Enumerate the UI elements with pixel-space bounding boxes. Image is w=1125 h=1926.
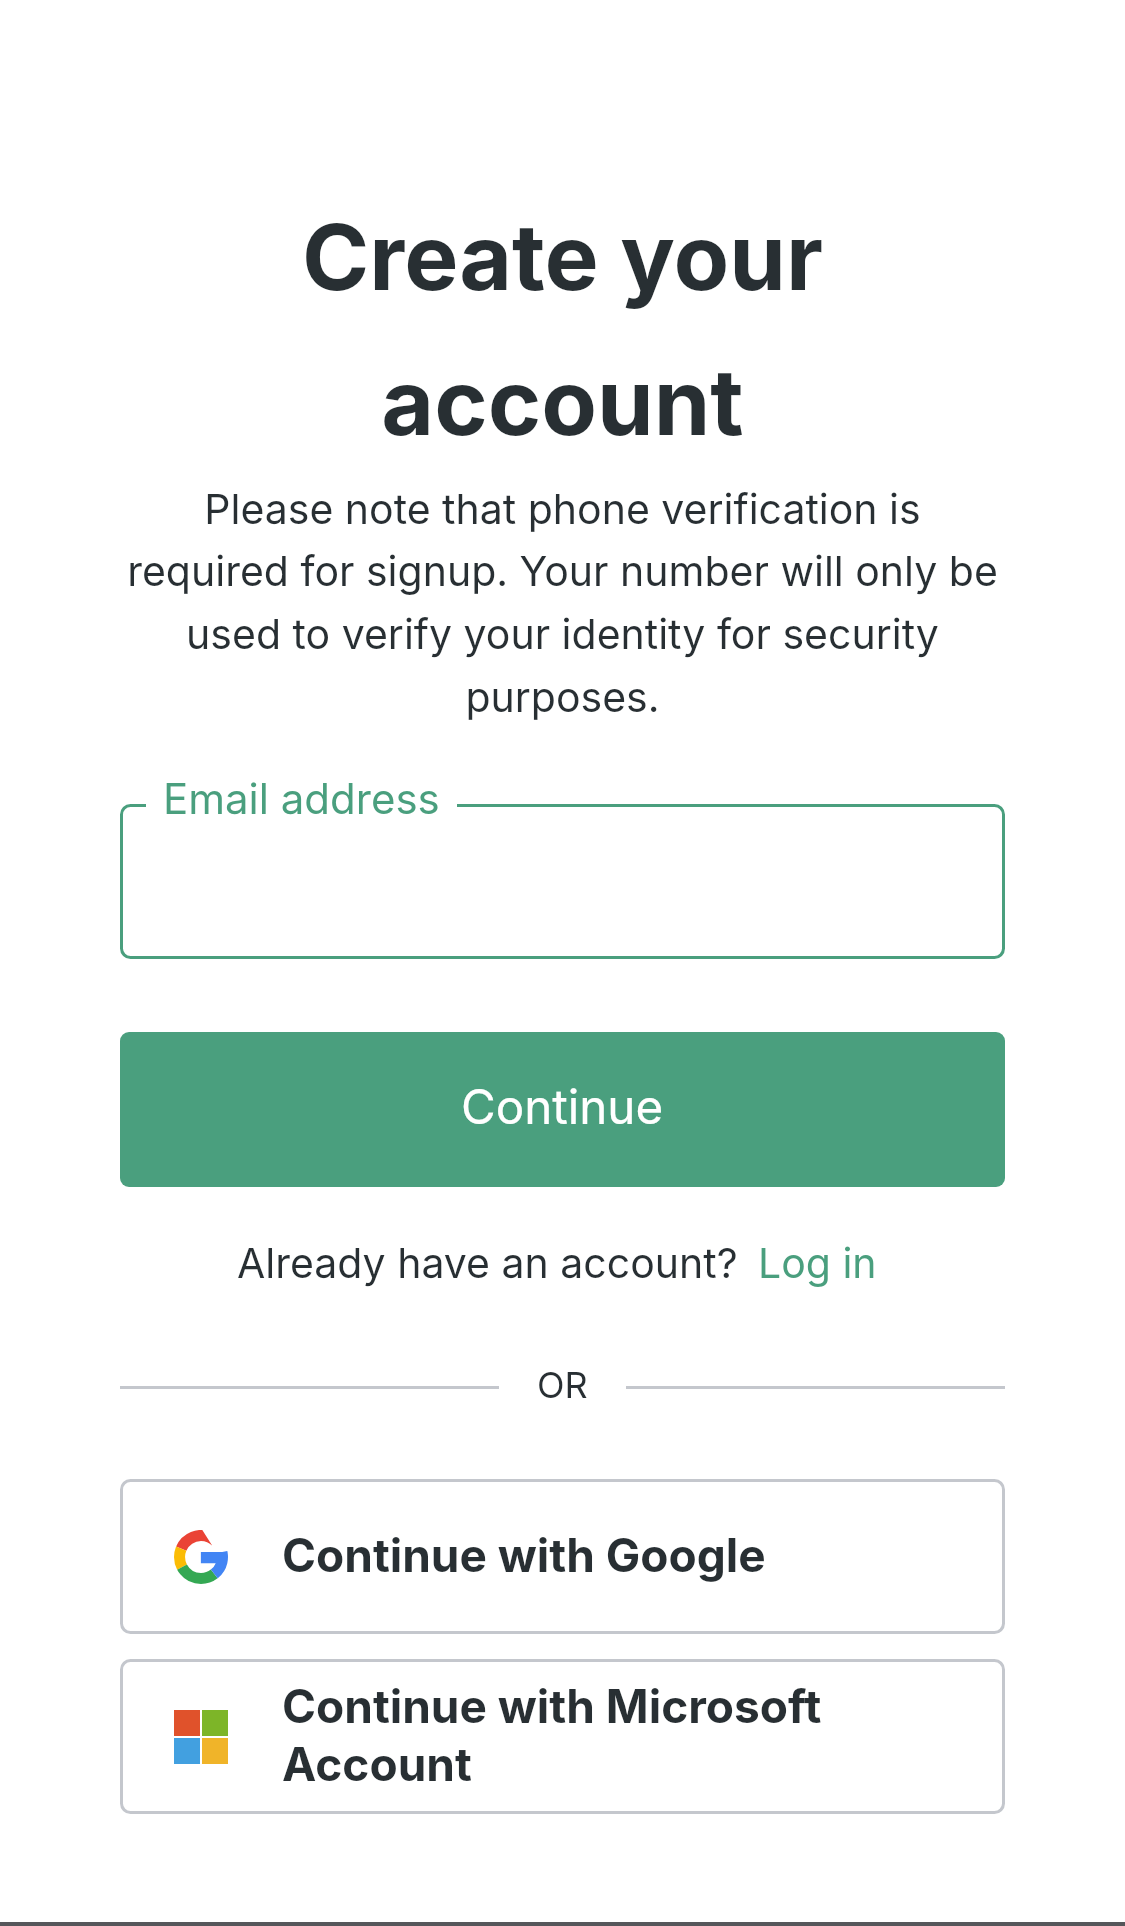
staticText: OR [537, 1363, 588, 1407]
staticText: Continue with Google [282, 1527, 902, 1583]
button[interactable]: Continue [120, 1032, 1005, 1187]
other: Microsoft logo [174, 1710, 228, 1764]
staticText: Already have an account? [237, 1238, 738, 1288]
other: Google logo [174, 1530, 228, 1584]
staticText: Log in [758, 1238, 877, 1288]
button[interactable]: Log in [758, 1238, 877, 1288]
staticText: Continue [461, 1078, 664, 1135]
staticText: Continue with Microsoft Account [282, 1678, 902, 1792]
button[interactable]: Microsoft logo [120, 1659, 1005, 1814]
button[interactable]: Email address [120, 804, 1005, 959]
button[interactable]: Google logo [120, 1479, 1005, 1634]
staticText: Create your account [160, 202, 965, 457]
staticText: Please note that phone verification is r… [120, 484, 1005, 722]
staticText: Email address [163, 773, 440, 824]
